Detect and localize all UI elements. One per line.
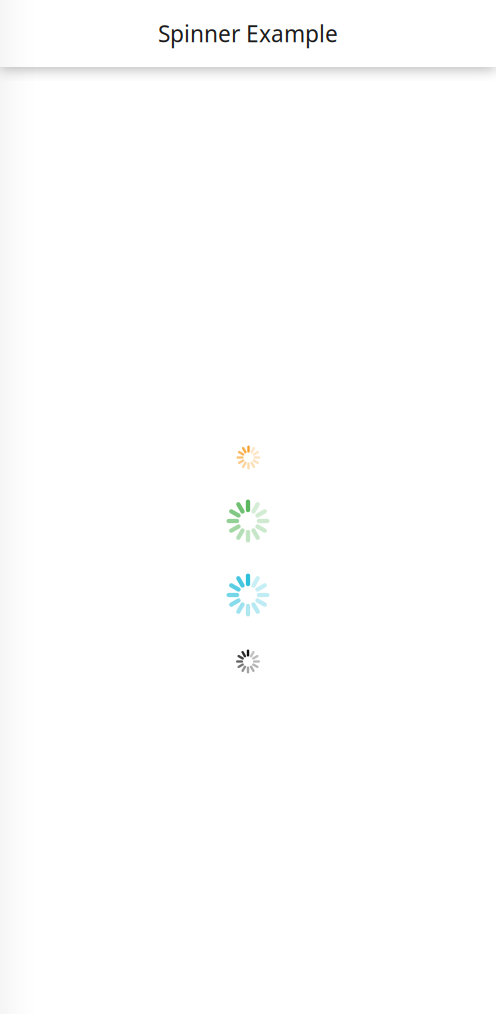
staticText: Spinner Example bbox=[158, 18, 338, 48]
